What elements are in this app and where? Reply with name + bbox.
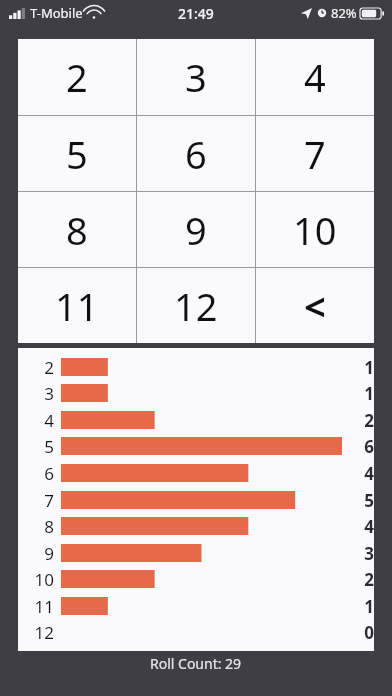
staticText: 12	[34, 621, 54, 644]
staticText: 2	[364, 409, 374, 432]
staticText: 12	[174, 280, 218, 332]
button[interactable]: 6	[137, 116, 255, 191]
staticText: 3	[185, 51, 207, 103]
button[interactable]: 11	[18, 268, 136, 343]
staticText: 6	[44, 462, 54, 485]
staticText: 4	[364, 462, 374, 485]
button[interactable]: <	[256, 268, 374, 343]
staticText: 82%	[331, 4, 357, 22]
staticText: 2	[44, 356, 54, 379]
staticText: 7	[44, 489, 54, 512]
staticText: 5	[364, 489, 374, 512]
staticText: Roll Count: 29	[150, 654, 242, 673]
staticText: 8	[44, 515, 54, 538]
staticText: 5	[44, 435, 54, 458]
staticText: 3	[364, 542, 374, 565]
button[interactable]: 2	[18, 39, 136, 115]
staticText: 0	[364, 621, 374, 644]
staticText: <	[304, 280, 326, 332]
staticText: T-Mobile	[30, 4, 83, 22]
staticText: 5	[66, 128, 88, 180]
button[interactable]: 4	[256, 39, 374, 115]
staticText: 9	[44, 542, 54, 565]
staticText: 11	[34, 595, 54, 618]
button[interactable]: 7	[256, 116, 374, 191]
staticText: 6	[185, 128, 207, 180]
staticText: 1	[364, 595, 374, 618]
staticText: 21:49	[178, 4, 214, 23]
staticText: 11	[55, 280, 99, 332]
staticText: 2	[364, 568, 374, 591]
staticText: 4	[44, 409, 54, 432]
button[interactable]: 10	[256, 192, 374, 267]
button[interactable]: 5	[18, 116, 136, 191]
staticText: 1	[364, 382, 374, 405]
staticText: 1	[364, 356, 374, 379]
button[interactable]: 9	[137, 192, 255, 267]
staticText: 4	[364, 515, 374, 538]
staticText: 7	[304, 128, 326, 180]
staticText: 10	[34, 568, 54, 591]
staticText: 2	[66, 51, 88, 103]
staticText: 9	[185, 204, 207, 256]
staticText: 4	[304, 51, 326, 103]
button[interactable]: 12	[137, 268, 255, 343]
staticText: 3	[44, 382, 54, 405]
staticText: 10	[293, 204, 337, 256]
staticText: 6	[364, 435, 374, 458]
button[interactable]: 3	[137, 39, 255, 115]
staticText: 8	[66, 204, 88, 256]
button[interactable]: 8	[18, 192, 136, 267]
